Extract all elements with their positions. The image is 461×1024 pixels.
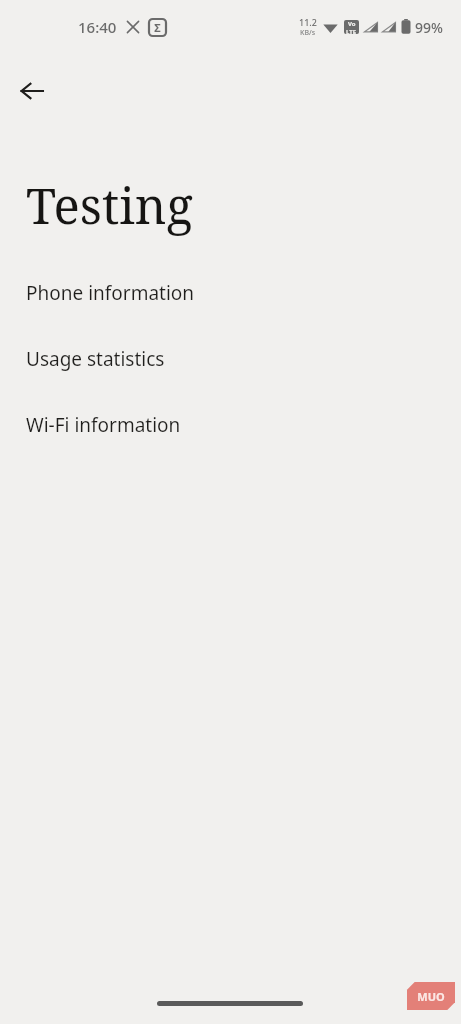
button[interactable]: Phone information: [0, 271, 461, 315]
staticText: Usage statistics: [26, 346, 165, 372]
staticText: 99%: [415, 18, 443, 37]
staticText: 16:40: [78, 17, 117, 37]
staticText: MUO: [417, 989, 445, 1004]
staticText: 11.2: [299, 16, 317, 28]
button[interactable]: Usage statistics: [0, 337, 461, 381]
staticText: Testing: [26, 172, 193, 239]
button[interactable]: Back: [8, 67, 56, 115]
staticText: Σ: [154, 20, 161, 35]
staticText: Phone information: [26, 280, 195, 306]
staticText: Wi-Fi information: [26, 412, 181, 438]
staticText: Vo: [348, 20, 356, 28]
staticText: KB/s: [300, 28, 316, 38]
button[interactable]: Wi-Fi information: [0, 403, 461, 447]
staticText: LTE: [346, 28, 357, 34]
